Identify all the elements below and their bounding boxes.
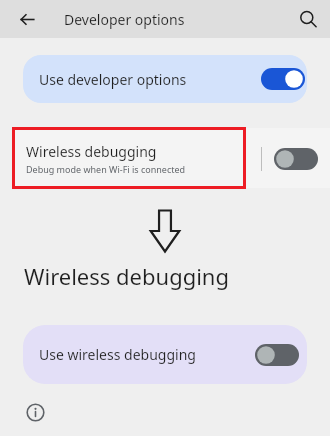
button[interactable]: Search [298,9,318,29]
staticText: Developer options [64,10,185,29]
staticText: Use developer options [39,70,187,89]
button[interactable]: Wireless debugging toggle [274,148,318,170]
button[interactable]: Back [17,9,38,30]
staticText: Debug mode when Wi-Fi is connected [26,163,186,175]
staticText: Wireless debugging [26,142,157,161]
button[interactable]: Information [26,403,45,422]
staticText: Use wireless debugging [39,345,196,364]
button[interactable]: Use wireless debugging [23,325,307,384]
button[interactable]: Use developer options [23,55,307,103]
staticText: Wireless debugging [24,261,229,291]
